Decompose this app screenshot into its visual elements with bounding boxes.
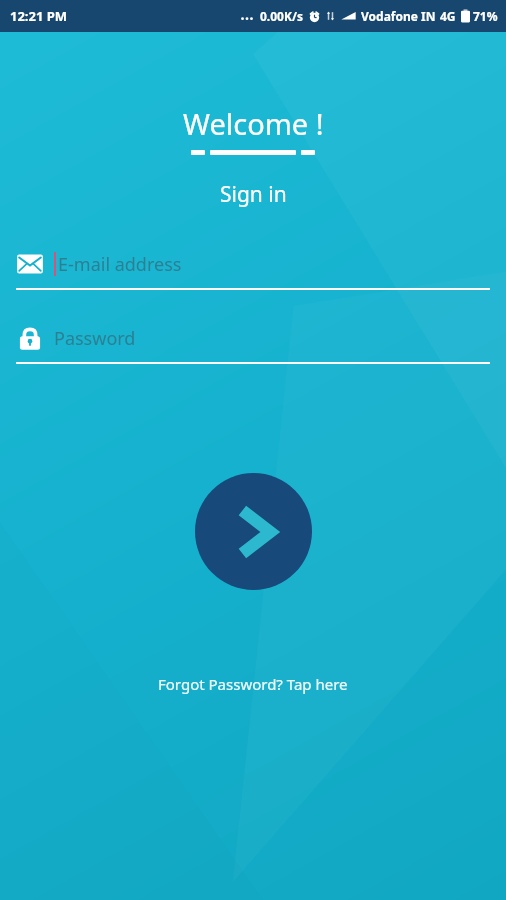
staticText: 4G xyxy=(440,8,456,24)
button[interactable]: Password xyxy=(16,321,490,364)
staticText: Sign in xyxy=(220,180,287,209)
button[interactable]: Forgot Password? Tap here xyxy=(146,668,360,700)
other: Password xyxy=(16,324,44,352)
staticText: 71% xyxy=(473,8,498,24)
staticText: Vodafone IN xyxy=(361,8,436,24)
staticText: 12:21 PM xyxy=(10,7,68,25)
staticText: E-mail address xyxy=(58,252,182,277)
button[interactable]: Sign in xyxy=(195,473,312,590)
staticText: Welcome ! xyxy=(183,104,324,143)
staticText: Password xyxy=(54,326,136,351)
other: E-mail xyxy=(16,250,44,278)
button[interactable]: E-mail xyxy=(16,247,490,290)
staticText: 0.00K/s xyxy=(260,8,303,24)
staticText: Forgot Password? Tap here xyxy=(158,674,348,694)
